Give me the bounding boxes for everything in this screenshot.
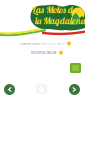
staticText: la Magdalena [35, 15, 85, 27]
button[interactable]: RESERVA ONLINE [31, 50, 63, 55]
button[interactable]: Menu [70, 63, 81, 73]
staticText: Las Motos de [32, 4, 76, 16]
button[interactable]: Previous slide [4, 84, 15, 95]
button[interactable]: Next slide [69, 84, 80, 95]
staticText: RESERVA ONLINE [31, 50, 57, 55]
staticText: RESERVACIONES: (961) 612 0817 [20, 42, 65, 45]
button[interactable]: RESERVACIONES: (961) 612 0817 [20, 41, 71, 45]
